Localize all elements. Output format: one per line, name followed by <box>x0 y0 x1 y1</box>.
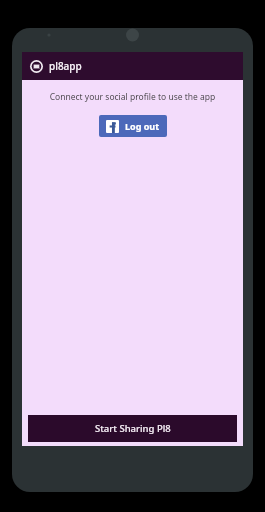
staticText: Connect your social profile to use the a… <box>22 91 243 103</box>
staticText: Log out <box>125 120 160 132</box>
button[interactable]: Start Sharing Pl8 <box>28 415 237 442</box>
staticText: Start Sharing Pl8 <box>95 422 171 435</box>
staticText: pl8app <box>49 59 82 73</box>
button[interactable]: pl8app <box>22 52 243 80</box>
button[interactable]: Log out <box>99 115 167 137</box>
